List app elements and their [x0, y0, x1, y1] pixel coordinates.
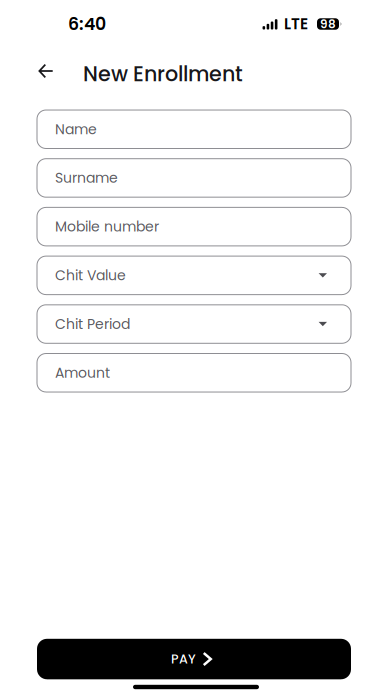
staticText: Name [55, 119, 97, 139]
button[interactable]: Chit Value [37, 256, 351, 295]
staticText: New Enrollment [83, 59, 243, 88]
staticText: LTE [284, 13, 308, 35]
staticText: Chit Value [55, 265, 126, 285]
button[interactable]: Name [37, 110, 351, 148]
button[interactable]: Chit Period [37, 305, 351, 343]
staticText: Mobile number [55, 217, 159, 236]
button[interactable]: PAY [37, 639, 351, 679]
staticText: 98 [320, 16, 336, 32]
button[interactable]: Back [30, 57, 60, 91]
button[interactable]: Amount [37, 353, 351, 392]
button[interactable]: Surname [37, 159, 351, 197]
staticText: 6:40 [68, 12, 106, 36]
staticText: PAY [171, 650, 196, 668]
staticText: Chit Period [55, 314, 130, 334]
staticText: Amount [55, 363, 110, 382]
staticText: Surname [55, 168, 118, 188]
button[interactable]: Mobile number [37, 207, 351, 246]
